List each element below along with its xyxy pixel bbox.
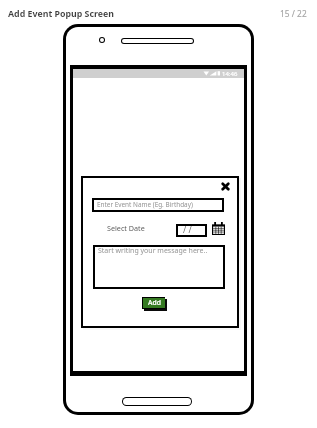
staticText: Add Event Popup Screen [8,8,114,20]
staticText: 15 / 22 [280,8,307,19]
staticText: 14:46 [222,70,238,78]
staticText: / / [183,224,192,236]
staticText: Select Date [107,223,145,233]
button[interactable]: Start writing your message here.. [93,245,225,289]
staticText: Enter Event Name (Eg. Birthday) [97,200,193,209]
button[interactable]: Close [218,179,233,194]
button[interactable]: / / [176,224,207,237]
button[interactable]: Add [142,297,165,309]
button[interactable]: Enter Event Name (Eg. Birthday) [92,198,224,212]
button[interactable]: Pick date [212,222,225,235]
staticText: Start writing your message here.. [98,246,208,256]
staticText: Add [148,298,161,307]
